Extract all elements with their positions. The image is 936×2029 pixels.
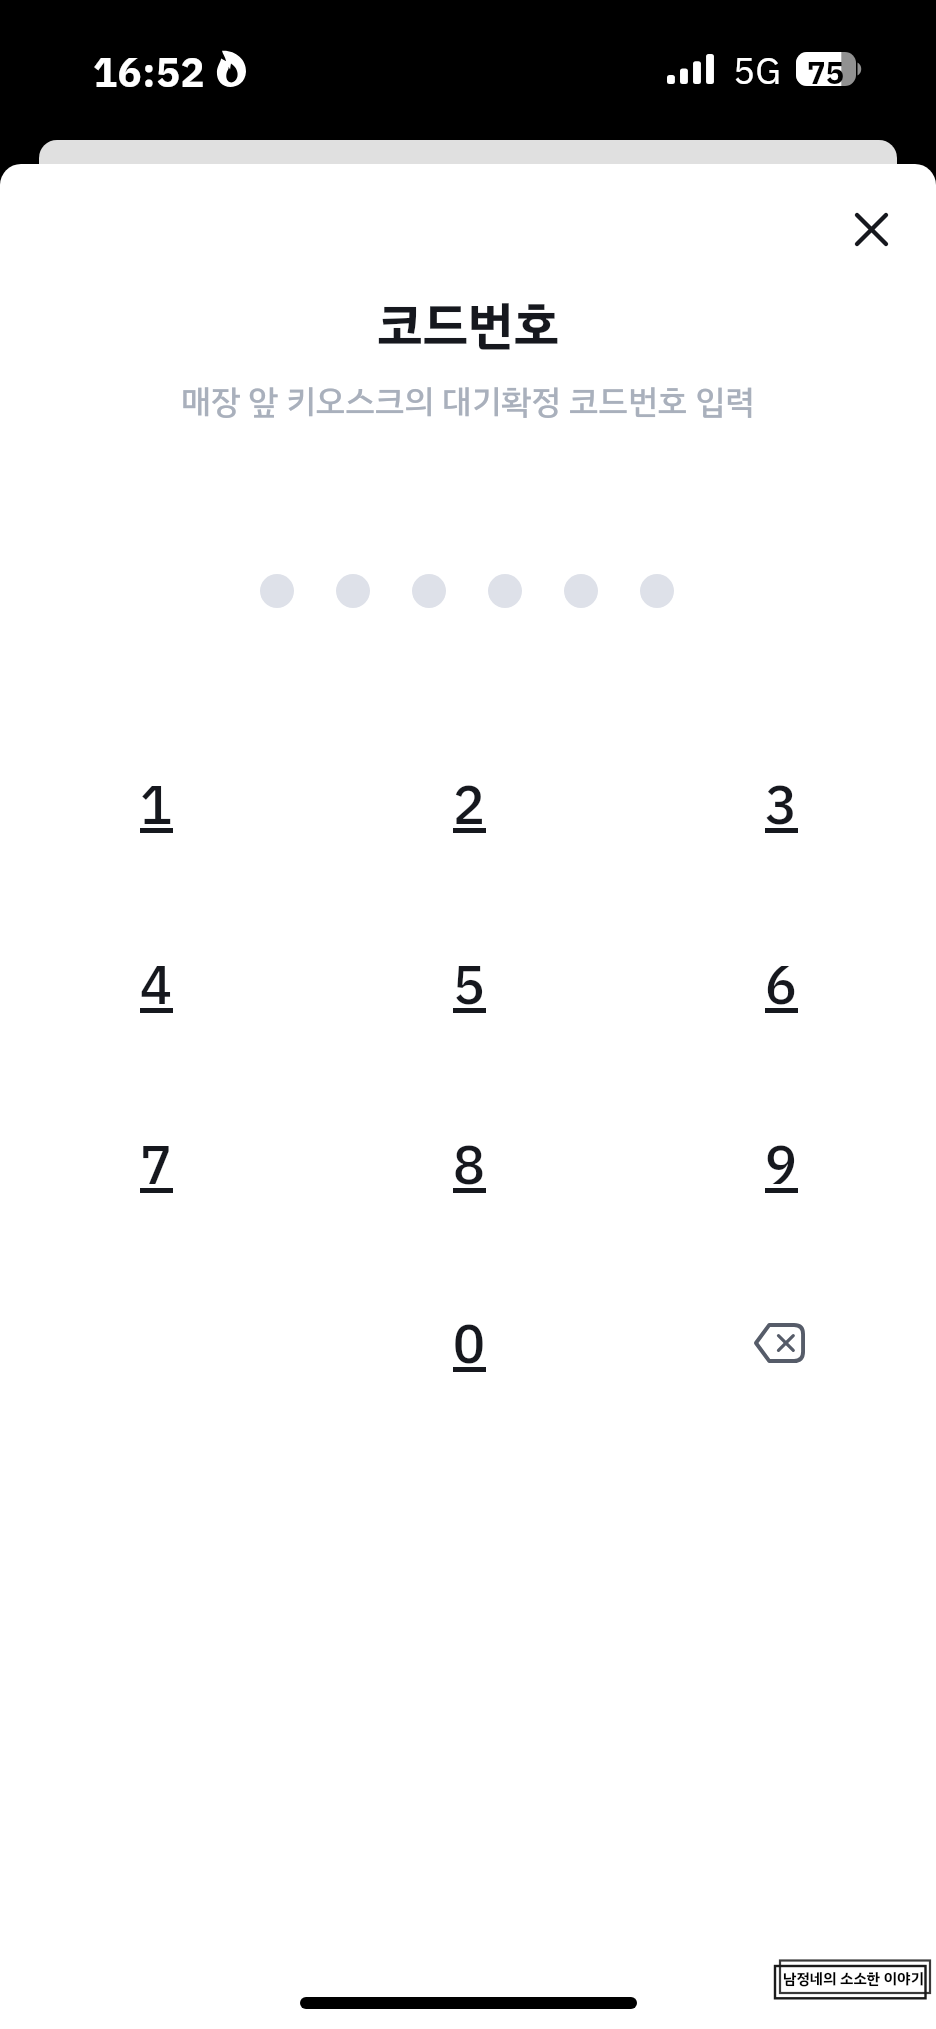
staticText: 남정네의 소소한 이야기 [783, 1968, 924, 1991]
staticText: 코드번호 [0, 288, 936, 365]
button[interactable]: 8 [379, 1087, 559, 1237]
staticText: 6 [736, 945, 826, 1026]
staticText: 9 [736, 1125, 826, 1206]
staticText: 75 [807, 50, 845, 97]
staticText: 4 [111, 945, 201, 1026]
button[interactable]: 9 [691, 1087, 871, 1237]
button[interactable]: 7 [66, 1087, 246, 1237]
staticText: 16:52 [93, 44, 206, 104]
button[interactable]: 1 [66, 727, 246, 877]
button[interactable]: 3 [691, 727, 871, 877]
staticText: 7 [111, 1125, 201, 1206]
staticText: 매장 앞 키오스크의 대기확정 코드번호 입력 [0, 377, 936, 427]
button[interactable]: 6 [691, 907, 871, 1057]
button[interactable]: 5 [379, 907, 559, 1057]
button[interactable]: Backspace [689, 1268, 869, 1418]
button[interactable]: 0 [379, 1266, 559, 1416]
staticText: 5 [424, 945, 514, 1026]
button[interactable]: 4 [66, 907, 246, 1057]
button[interactable]: Close [827, 185, 915, 273]
button[interactable]: 2 [379, 727, 559, 877]
staticText: 2 [424, 765, 514, 846]
staticText: 5G [733, 44, 781, 100]
staticText: 3 [736, 765, 826, 846]
staticText: 1 [111, 765, 201, 846]
staticText: 8 [424, 1125, 514, 1206]
staticText: 0 [424, 1304, 514, 1385]
